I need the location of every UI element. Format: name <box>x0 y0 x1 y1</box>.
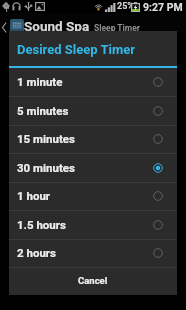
button[interactable]: Cancel <box>9 268 177 296</box>
button[interactable]: 15 minutes <box>9 125 177 154</box>
staticText: 1.5 hours <box>17 218 66 231</box>
staticText: 25% <box>117 1 134 12</box>
button[interactable]: 5 minutes <box>9 97 177 126</box>
staticText: 1 hour <box>17 189 51 202</box>
staticText: 30 minutes <box>17 161 75 174</box>
staticText: 5 minutes <box>17 104 69 117</box>
staticText: 9:27 PM <box>143 1 183 13</box>
staticText: 2 hours <box>17 246 56 259</box>
staticText: Cancel <box>78 275 108 286</box>
staticText: Sleep Timer <box>94 23 140 33</box>
staticText: Desired Sleep Timer <box>17 42 136 57</box>
button[interactable]: 1.5 hours <box>9 211 177 240</box>
button[interactable]: 2 hours <box>9 239 177 268</box>
button[interactable]: 1 minute <box>9 68 177 97</box>
staticText: Sound Spa <box>24 18 90 34</box>
button[interactable]: Navigate up <box>0 13 9 32</box>
staticText: 1 minute <box>17 75 63 88</box>
staticText: 15 minutes <box>17 132 75 145</box>
button[interactable]: 1 hour <box>9 182 177 211</box>
button[interactable]: 30 minutes <box>9 154 177 183</box>
